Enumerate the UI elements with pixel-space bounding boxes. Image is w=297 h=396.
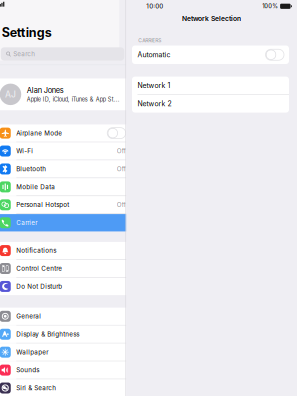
button[interactable]: Personal Hotspot: [0, 196, 132, 213]
button[interactable]: Wi-Fi: [0, 142, 132, 160]
staticText: CARRIERS: [138, 37, 161, 43]
staticText: Off: [117, 165, 126, 173]
button[interactable]: Carrier: [0, 214, 132, 231]
staticText: Alan Jones: [27, 86, 64, 95]
button[interactable]: Notifications: [0, 242, 132, 259]
staticText: 10:00: [146, 2, 163, 10]
button[interactable]: Network 2: [132, 95, 289, 113]
staticText: Bluetooth: [16, 165, 46, 173]
button[interactable]: Automatic: [132, 45, 289, 64]
staticText: Automatic: [137, 51, 170, 59]
staticText: Display & Brightness: [16, 330, 79, 338]
staticText: AJ: [5, 89, 16, 99]
staticText: Siri & Search: [16, 384, 56, 392]
button[interactable]: Control Centre: [0, 260, 132, 277]
button[interactable]: Network 1: [132, 77, 289, 94]
staticText: Sounds: [16, 366, 39, 374]
staticText: Wallpaper: [16, 348, 48, 356]
button[interactable]: Siri & Search: [0, 379, 132, 396]
staticText: Do Not Disturb: [16, 283, 62, 290]
staticText: Network 2: [137, 100, 171, 108]
staticText: Notifications: [16, 247, 56, 254]
staticText: Airplane Mode: [16, 129, 62, 137]
button[interactable]: Airplane Mode: [0, 124, 132, 142]
staticText: Off: [117, 201, 126, 209]
staticText: Wi-Fi: [16, 147, 33, 155]
button[interactable]: Do Not Disturb: [0, 278, 132, 295]
button[interactable]: Bluetooth: [0, 160, 132, 178]
button[interactable]: Sounds: [0, 361, 132, 379]
button[interactable]: Display & Brightness: [0, 326, 132, 343]
staticText: Settings: [2, 25, 52, 40]
staticText: Personal Hotspot: [16, 201, 69, 209]
button[interactable]: AJ: [0, 78, 132, 110]
staticText: General: [16, 312, 41, 320]
staticText: 100%: [262, 3, 278, 10]
staticText: Search: [13, 50, 35, 58]
button[interactable]: Mobile Data: [0, 178, 132, 195]
staticText: Carrier: [16, 219, 37, 227]
staticText: Apple ID, iCloud, iTunes & App St...: [27, 96, 120, 103]
staticText: Control Centre: [16, 265, 62, 272]
staticText: Mobile Data: [16, 183, 55, 191]
staticText: Network Selection: [182, 14, 241, 23]
staticText: Off: [117, 147, 126, 155]
button[interactable]: General: [0, 308, 132, 325]
button[interactable]: Wallpaper: [0, 343, 132, 361]
staticText: Network 1: [137, 81, 170, 90]
